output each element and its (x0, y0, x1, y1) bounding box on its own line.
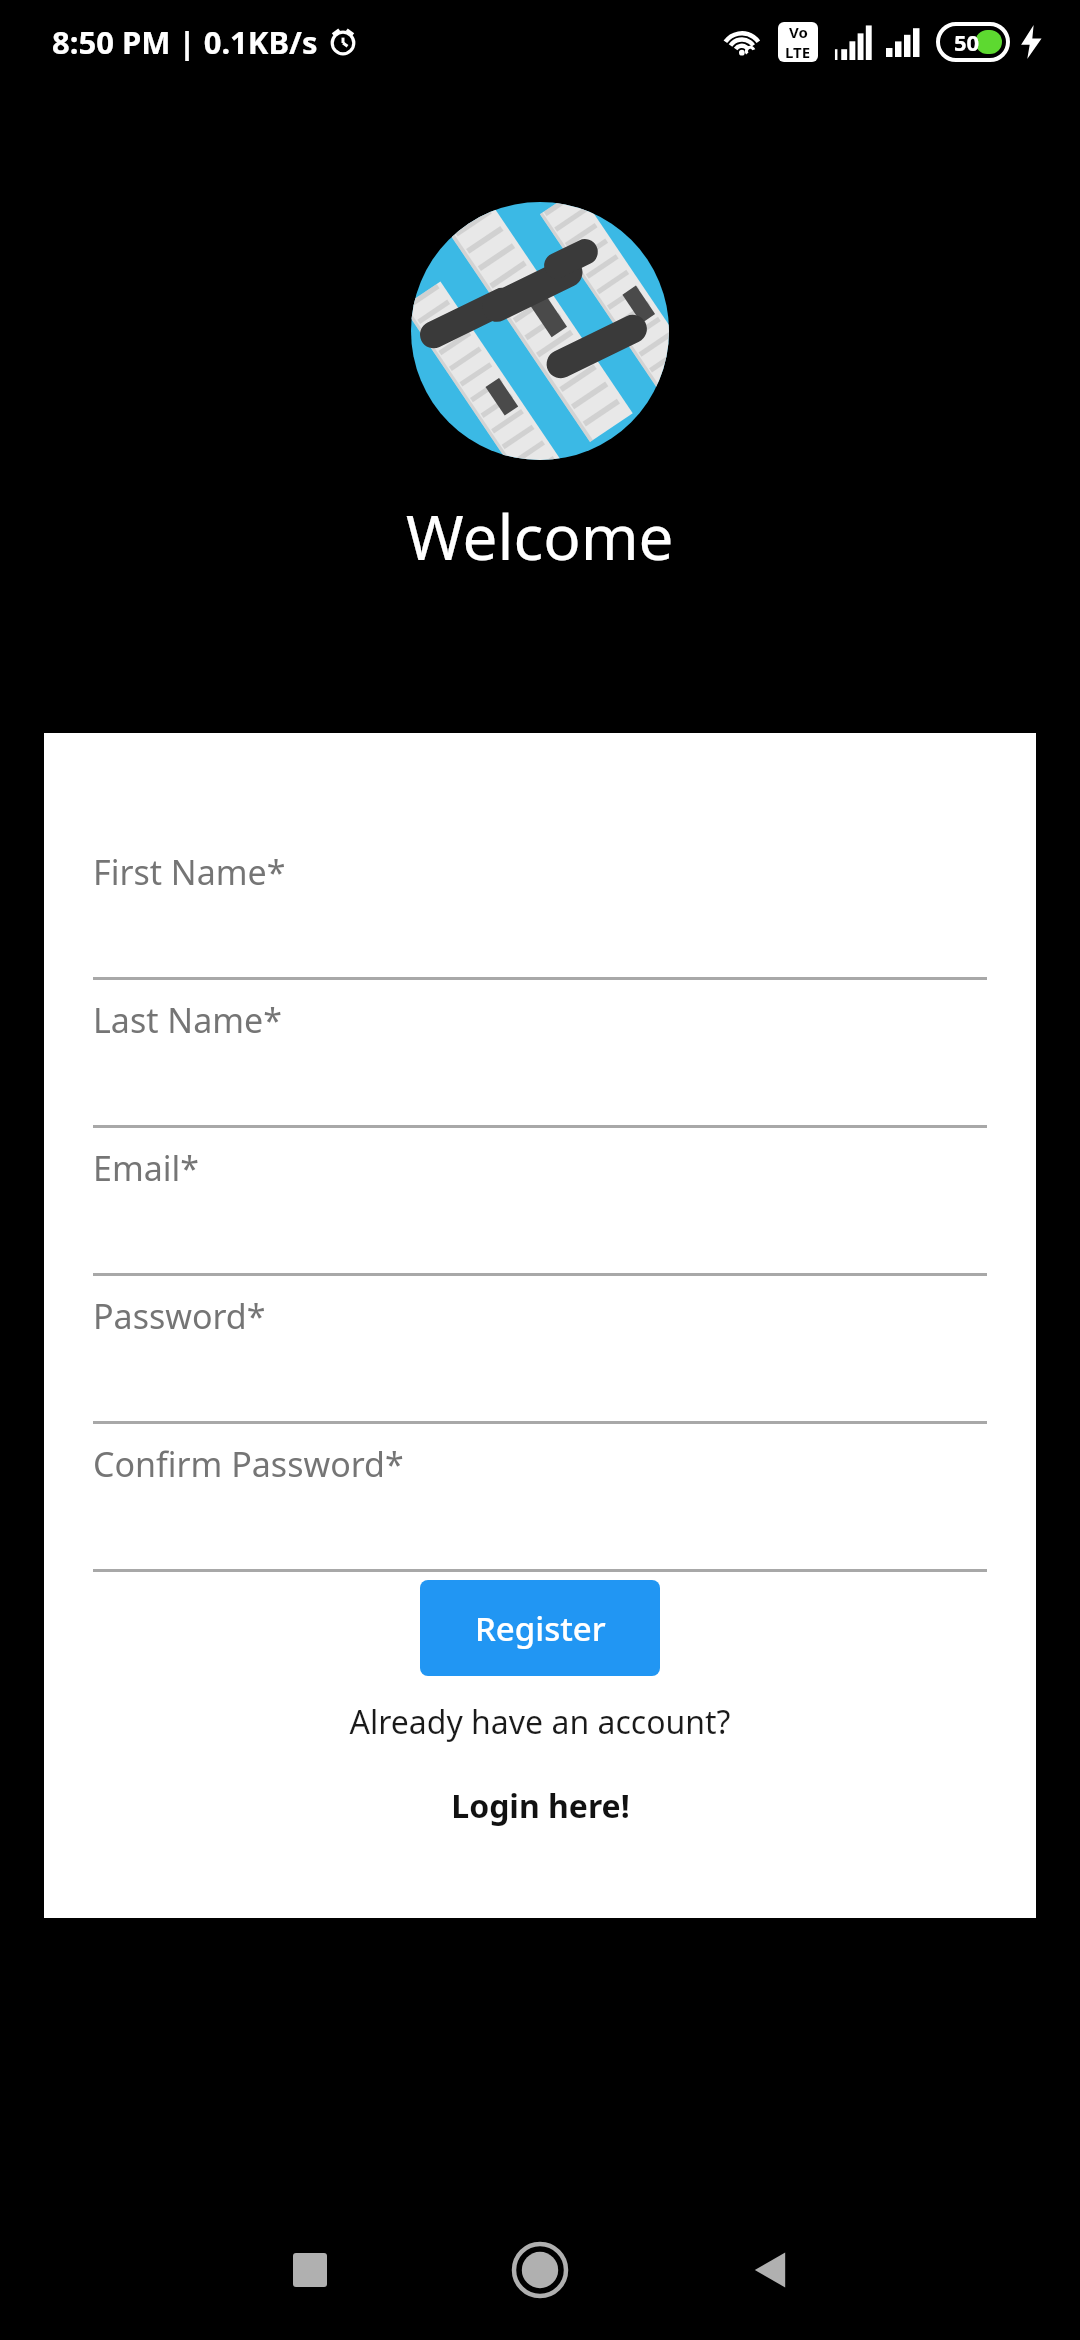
staticText: Login here! (451, 1784, 630, 1828)
button[interactable]: Home (495, 2225, 585, 2315)
button[interactable]: Last Name* (93, 991, 987, 1131)
staticText: Already have an account? (349, 1700, 731, 1744)
staticText: Confirm Password* (93, 1441, 404, 1487)
staticText: Welcome (406, 494, 674, 578)
button[interactable]: Password* (93, 1287, 987, 1427)
staticText: Register (475, 1606, 606, 1651)
button[interactable]: Login here! (44, 1773, 1036, 1839)
staticText: Password* (93, 1293, 266, 1339)
staticText: Vo (789, 22, 808, 42)
staticText: LTE (785, 42, 811, 62)
button[interactable]: Back (728, 2228, 812, 2312)
staticText: Last Name* (93, 997, 282, 1043)
button[interactable]: Confirm Password* (93, 1435, 987, 1575)
staticText: 50 (954, 27, 980, 57)
staticText: 8:50 PM | 0.1KB/s (52, 21, 318, 63)
staticText: Email* (93, 1145, 200, 1191)
staticText: First Name* (93, 849, 286, 895)
button[interactable]: Recents (268, 2228, 352, 2312)
button[interactable]: Email* (93, 1139, 987, 1279)
button[interactable]: First Name* (93, 843, 987, 983)
button[interactable]: Register (420, 1580, 660, 1676)
